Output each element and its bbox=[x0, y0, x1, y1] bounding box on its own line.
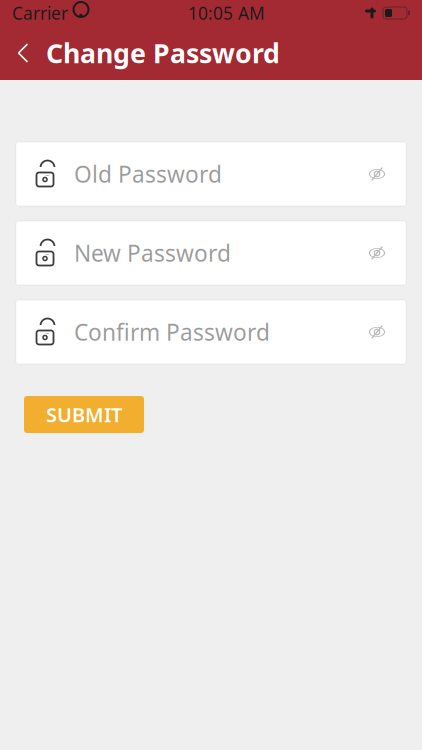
staticText: Change Password bbox=[46, 35, 280, 71]
staticText: Old Password bbox=[74, 159, 222, 189]
button[interactable]: New Password bbox=[16, 221, 406, 285]
button[interactable]: Confirm Password bbox=[16, 300, 406, 364]
staticText: New Password bbox=[74, 238, 231, 268]
button[interactable]: Old Password bbox=[16, 142, 406, 206]
staticText: SUBMIT bbox=[46, 401, 122, 428]
staticText: 10:05 AM bbox=[188, 1, 265, 24]
staticText: Carrier bbox=[12, 1, 68, 24]
button[interactable]: Back bbox=[0, 26, 46, 80]
staticText: Confirm Password bbox=[74, 317, 270, 347]
button[interactable]: SUBMIT bbox=[24, 396, 144, 433]
